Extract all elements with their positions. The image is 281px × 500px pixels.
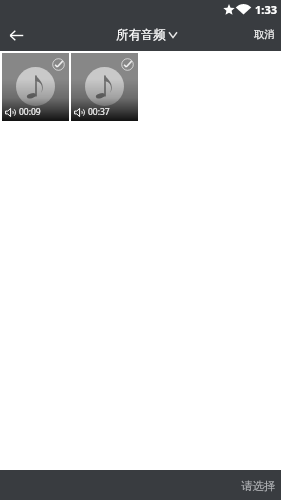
button[interactable]: Select	[121, 58, 134, 71]
staticText: 1:33	[255, 2, 277, 17]
staticText: 所有音频	[116, 27, 166, 43]
button[interactable]: Select	[2, 53, 69, 121]
button[interactable]: 所有音频	[105, 18, 177, 51]
button[interactable]: 请选择	[227, 470, 281, 500]
button[interactable]: Back	[0, 19, 32, 51]
staticText: 00:09	[19, 106, 41, 118]
button[interactable]: Select	[71, 53, 138, 121]
staticText: 取消	[254, 28, 275, 41]
button[interactable]: Select	[52, 58, 65, 71]
staticText: 请选择	[241, 479, 276, 493]
staticText: 00:37	[88, 106, 110, 118]
button[interactable]: 取消	[242, 18, 281, 51]
